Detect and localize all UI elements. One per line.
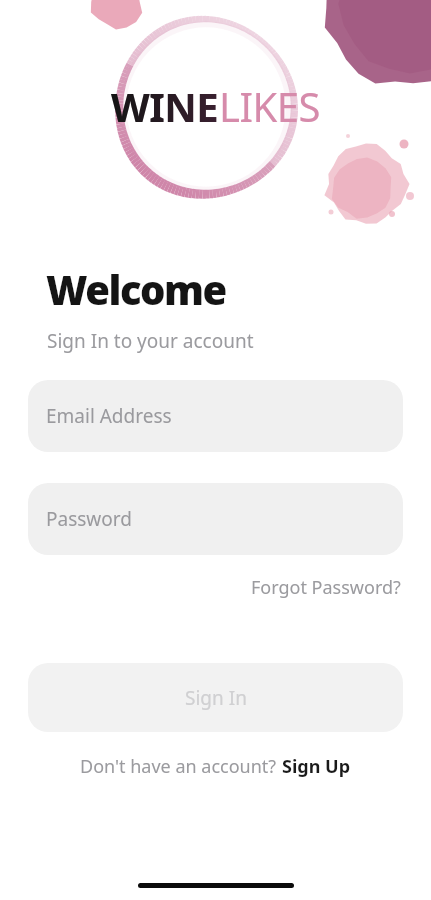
staticText: Sign In to your account [47,328,254,354]
button[interactable]: Email Address [28,380,403,452]
staticText: Don't have an account? [80,754,281,779]
staticText: Email Address [46,403,172,429]
staticText: Sign Up [282,754,351,779]
staticText: Password [46,506,132,532]
button[interactable]: Forgot Password? [249,569,403,606]
staticText: WINE [111,79,219,133]
staticText: Forgot Password? [251,575,401,600]
button[interactable]: Sign Up [281,750,352,783]
staticText: LIKES [219,79,320,133]
staticText: Sign In [185,685,247,711]
button[interactable]: Password [28,483,403,555]
button[interactable]: Sign In [28,663,403,732]
staticText: Welcome [46,262,226,316]
